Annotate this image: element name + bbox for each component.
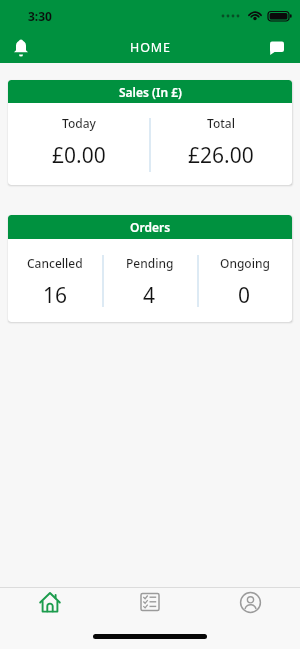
- staticText: Sales (In £): [119, 84, 182, 100]
- staticText: 4: [143, 281, 156, 310]
- button[interactable]: [100, 588, 200, 616]
- staticText: HOME: [130, 39, 171, 56]
- staticText: Cancelled: [27, 255, 83, 271]
- staticText: Ongoing: [220, 255, 270, 271]
- button[interactable]: [10, 37, 32, 59]
- button[interactable]: [0, 588, 100, 616]
- staticText: 0: [238, 281, 251, 310]
- staticText: Today: [62, 115, 96, 131]
- staticText: Total: [207, 115, 235, 131]
- staticText: 16: [43, 281, 68, 310]
- staticText: £26.00: [188, 141, 254, 170]
- staticText: 3:30: [28, 8, 52, 24]
- staticText: Pending: [126, 255, 174, 271]
- staticText: Orders: [130, 219, 171, 235]
- button[interactable]: [200, 588, 300, 616]
- button[interactable]: [266, 37, 288, 59]
- staticText: £0.00: [52, 141, 106, 170]
